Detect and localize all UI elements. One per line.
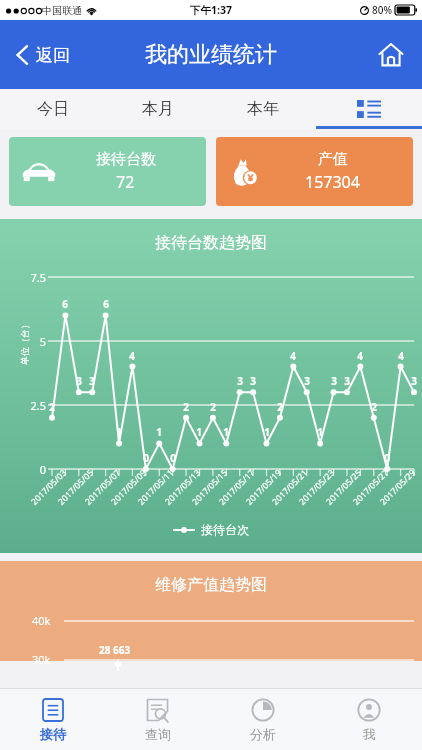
button[interactable]: 分析 xyxy=(210,689,316,750)
staticText: 5 xyxy=(39,334,46,349)
staticText: 0 xyxy=(170,451,176,465)
staticText: 2017/05/07 xyxy=(82,466,123,507)
staticText: 2017/05/13 xyxy=(162,466,203,507)
staticText: 30k xyxy=(32,652,51,667)
staticText: 2017/05/27 xyxy=(350,466,391,507)
button[interactable]: 今日 xyxy=(0,89,105,129)
button[interactable]: 查询 xyxy=(105,689,210,750)
staticText: 80% xyxy=(372,3,392,17)
staticText: 0 xyxy=(143,451,149,465)
button[interactable]: 接待台数 xyxy=(9,137,206,206)
staticText: 6 xyxy=(103,297,109,311)
staticText: 1 xyxy=(156,425,162,439)
staticText: 我 xyxy=(363,726,376,742)
staticText: 3 xyxy=(76,374,82,388)
staticText: 2017/05/19 xyxy=(243,466,284,507)
staticText: 1 xyxy=(196,425,202,439)
staticText: 2017/05/03 xyxy=(28,466,69,507)
staticText: 0 xyxy=(39,462,46,477)
button[interactable]: 返回 xyxy=(10,38,76,72)
staticText: 产值 xyxy=(318,150,348,169)
button[interactable]: 接待台次 xyxy=(173,522,249,537)
staticText: 2 xyxy=(277,400,283,414)
staticText: 2 xyxy=(49,400,55,414)
button[interactable]: 接待台数趋势图 xyxy=(0,219,422,553)
staticText: 查询 xyxy=(145,726,171,742)
staticText: 7.5 xyxy=(30,270,46,285)
staticText: 1 xyxy=(116,425,122,439)
staticText: 今日 xyxy=(37,99,69,119)
staticText: 2 xyxy=(183,400,189,414)
staticText: 4 xyxy=(357,349,363,363)
button[interactable]: Home xyxy=(372,36,410,74)
staticText: 3 xyxy=(411,374,417,388)
staticText: 0 xyxy=(384,451,390,465)
staticText: 28 663 xyxy=(99,643,131,657)
staticText: 4 xyxy=(398,349,404,363)
button[interactable]: 维修产值趋势图 xyxy=(0,561,422,661)
staticText: 2 xyxy=(371,400,377,414)
staticText: 3 xyxy=(331,374,337,388)
button[interactable]: List view xyxy=(316,89,422,129)
staticText: 单位（台） xyxy=(19,320,30,365)
staticText: 2017/05/21 xyxy=(269,466,310,507)
staticText: 2017/05/15 xyxy=(189,466,230,507)
staticText: 40k xyxy=(32,613,51,628)
button[interactable]: 接待 xyxy=(0,689,105,750)
staticText: 2017/05/25 xyxy=(323,466,364,507)
staticText: 下午1:37 xyxy=(190,3,232,17)
button[interactable]: 本月 xyxy=(105,89,210,129)
staticText: 157304 xyxy=(305,171,360,193)
button[interactable]: 产值 xyxy=(216,137,413,206)
staticText: 中国联通 xyxy=(42,4,82,17)
staticText: 4 xyxy=(290,349,296,363)
staticText: 本月 xyxy=(142,99,174,119)
staticText: 本年 xyxy=(247,99,279,119)
staticText: 2017/05/05 xyxy=(55,466,96,507)
staticText: 1 xyxy=(317,425,323,439)
staticText: 2.5 xyxy=(30,398,46,413)
staticText: 4 xyxy=(129,349,135,363)
staticText: 3 xyxy=(344,374,350,388)
staticText: 3 xyxy=(304,374,310,388)
staticText: 维修产值趋势图 xyxy=(155,575,267,595)
staticText: 3 xyxy=(250,374,256,388)
button[interactable]: 本年 xyxy=(210,89,316,129)
staticText: 6 xyxy=(62,297,68,311)
staticText: 接待台数趋势图 xyxy=(155,233,267,253)
staticText: 2017/05/17 xyxy=(216,466,257,507)
staticText: 2017/05/09 xyxy=(108,466,149,507)
staticText: 3 xyxy=(237,374,243,388)
staticText: 我的业绩统计 xyxy=(145,41,277,69)
staticText: 2017/05/11 xyxy=(135,466,176,507)
staticText: 72 xyxy=(116,171,135,193)
staticText: 接待 xyxy=(40,726,66,742)
staticText: 接待台数 xyxy=(96,150,156,169)
staticText: 返回 xyxy=(36,45,70,66)
staticText: 1 xyxy=(264,425,270,439)
staticText: 2 xyxy=(210,400,216,414)
staticText: 2017/05/23 xyxy=(296,466,337,507)
staticText: 2017/05/29 xyxy=(377,466,418,507)
staticText: 分析 xyxy=(250,726,276,742)
staticText: 接待台次 xyxy=(201,522,249,537)
button[interactable]: 我 xyxy=(316,689,422,750)
staticText: 1 xyxy=(223,425,229,439)
staticText: 3 xyxy=(89,374,95,388)
